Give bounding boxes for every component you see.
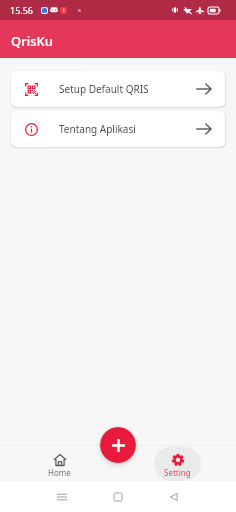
staticText: Tentang Aplikasi — [59, 122, 136, 136]
button[interactable]: Tentang Aplikasi — [11, 111, 225, 147]
staticText: Setting — [164, 467, 191, 478]
staticText: t — [63, 7, 65, 14]
staticText: Home — [48, 467, 71, 478]
button[interactable]: Add — [100, 427, 136, 463]
staticText: 15.56 — [10, 4, 34, 16]
staticText: QrisKu — [11, 32, 53, 50]
button[interactable]: Home — [90, 481, 146, 512]
button[interactable]: Home — [36, 447, 83, 481]
staticText: Setup Default QRIS — [59, 82, 149, 96]
button[interactable]: Recents — [34, 481, 90, 512]
button[interactable]: Setup Default QRIS — [11, 71, 225, 107]
button[interactable]: Back — [146, 481, 202, 512]
button[interactable]: Setting — [154, 447, 201, 481]
